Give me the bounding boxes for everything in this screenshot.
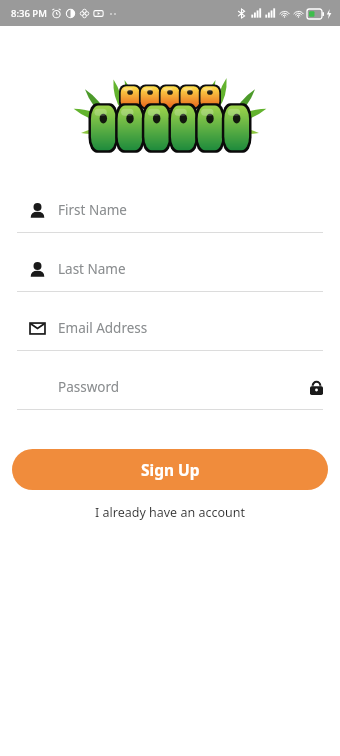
button[interactable]: Sign Up — [12, 449, 328, 490]
staticText: Password — [58, 378, 310, 396]
button[interactable]: Last Name — [0, 247, 340, 306]
staticText: Sign Up — [141, 459, 200, 480]
button[interactable]: I already have an account — [0, 500, 340, 525]
button[interactable]: First Name — [0, 188, 340, 247]
button[interactable]: Email Address — [0, 306, 340, 365]
other: Dream Riders logo — [77, 84, 263, 156]
staticText: I already have an account — [95, 504, 245, 521]
staticText: Last Name — [58, 260, 323, 278]
staticText: Email Address — [58, 319, 323, 337]
staticText: 8:36 PM — [11, 7, 47, 20]
staticText: First Name — [58, 201, 323, 219]
button[interactable]: Password — [0, 365, 340, 424]
